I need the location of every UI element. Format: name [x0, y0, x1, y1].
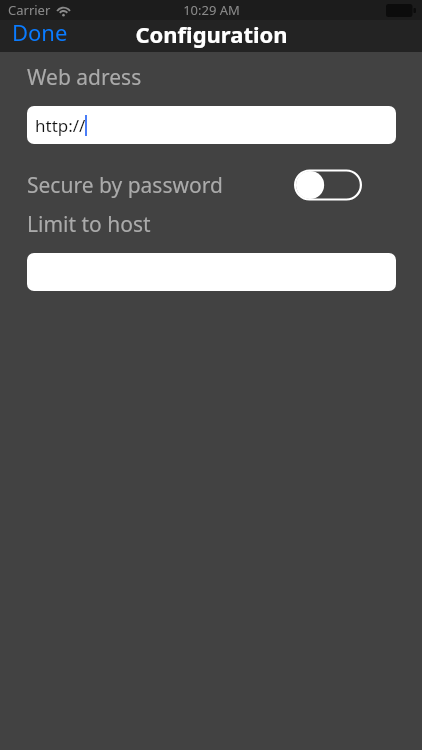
staticText: Secure by password: [27, 171, 223, 200]
button[interactable]: [27, 253, 396, 291]
button[interactable]: Done: [8, 15, 72, 49]
staticText: Done: [12, 17, 68, 47]
button[interactable]: Secure by password: [0, 166, 422, 204]
staticText: 10:29 AM: [183, 1, 240, 19]
staticText: Web adress: [27, 63, 142, 92]
staticText: Carrier: [8, 1, 51, 19]
staticText: Configuration: [135, 19, 288, 49]
staticText: Limit to host: [27, 210, 151, 239]
staticText: http://: [35, 114, 86, 137]
button[interactable]: http://: [27, 106, 396, 144]
button[interactable]: Secure by password toggle, off: [294, 166, 362, 204]
